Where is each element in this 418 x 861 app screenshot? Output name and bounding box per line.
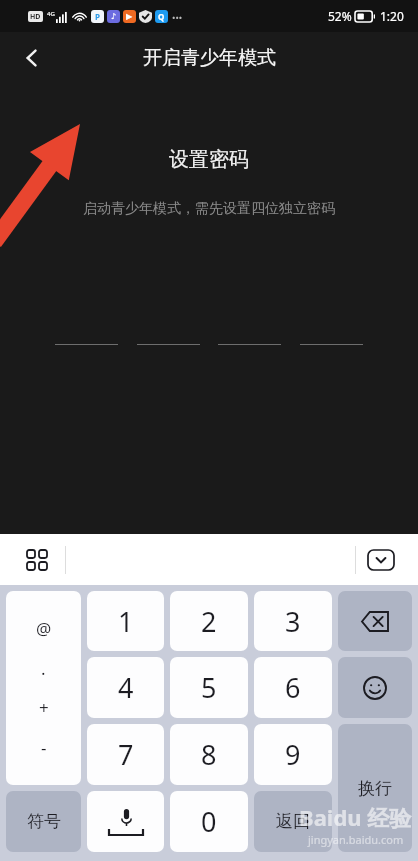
staticText: 3 <box>285 603 301 640</box>
button[interactable]: 符号 <box>6 791 81 852</box>
staticText: 0 <box>201 803 217 840</box>
staticText: P <box>95 11 100 22</box>
staticText: @ <box>36 617 52 640</box>
button[interactable]: 9 <box>254 724 332 785</box>
staticText: 返回 <box>276 811 310 832</box>
button[interactable]: 7 <box>87 724 164 785</box>
button[interactable]: 5 <box>170 657 248 718</box>
button[interactable] <box>300 309 363 345</box>
button[interactable]: 换行 <box>338 724 412 852</box>
button[interactable]: Back <box>10 36 54 80</box>
button[interactable]: 2 <box>170 591 248 651</box>
staticText: 符号 <box>27 811 61 832</box>
staticText: 4G <box>47 10 55 18</box>
staticText: 52% <box>328 8 352 24</box>
button[interactable]: 8 <box>170 724 248 785</box>
button[interactable]: Backspace <box>338 591 412 651</box>
staticText: 4 <box>118 669 134 706</box>
staticText: HD <box>30 12 41 22</box>
button[interactable]: Hide keyboard <box>360 539 402 581</box>
staticText: Q <box>158 11 165 22</box>
staticText: ♪ <box>111 12 117 21</box>
button[interactable] <box>137 309 200 345</box>
button[interactable]: 3 <box>254 591 332 651</box>
button[interactable]: Keyboard layouts <box>16 539 58 581</box>
staticText: 8 <box>201 736 217 773</box>
button[interactable]: 返回 <box>254 791 332 852</box>
staticText: ••• <box>172 11 183 23</box>
button[interactable]: Voice input and space <box>87 791 164 852</box>
staticText: - <box>41 736 47 759</box>
button[interactable] <box>218 309 281 345</box>
button[interactable]: 6 <box>254 657 332 718</box>
button[interactable]: 4 <box>87 657 164 718</box>
staticText: 6 <box>285 669 301 706</box>
button[interactable]: Symbols column <box>6 591 81 785</box>
staticText: 2 <box>201 603 217 640</box>
button[interactable]: 0 <box>170 791 248 852</box>
staticText: + <box>39 696 49 719</box>
staticText: ▶ <box>126 12 133 21</box>
staticText: 1 <box>118 603 134 640</box>
button[interactable]: Emoji <box>338 657 412 718</box>
staticText: . <box>41 657 46 680</box>
button[interactable] <box>55 309 118 345</box>
staticText: 7 <box>118 736 134 773</box>
staticText: 开启青少年模式 <box>143 46 276 70</box>
staticText: jingyan.baidu.com <box>308 832 404 847</box>
staticText: 1:20 <box>380 8 404 24</box>
staticText: Baidu 经验 <box>299 802 412 832</box>
staticText: 9 <box>285 736 301 773</box>
staticText: 启动青少年模式，需先设置四位独立密码 <box>83 200 335 218</box>
staticText: 设置密码 <box>169 147 249 172</box>
staticText: 换行 <box>358 778 392 799</box>
staticText: 5 <box>201 669 217 706</box>
button[interactable]: 1 <box>87 591 164 651</box>
